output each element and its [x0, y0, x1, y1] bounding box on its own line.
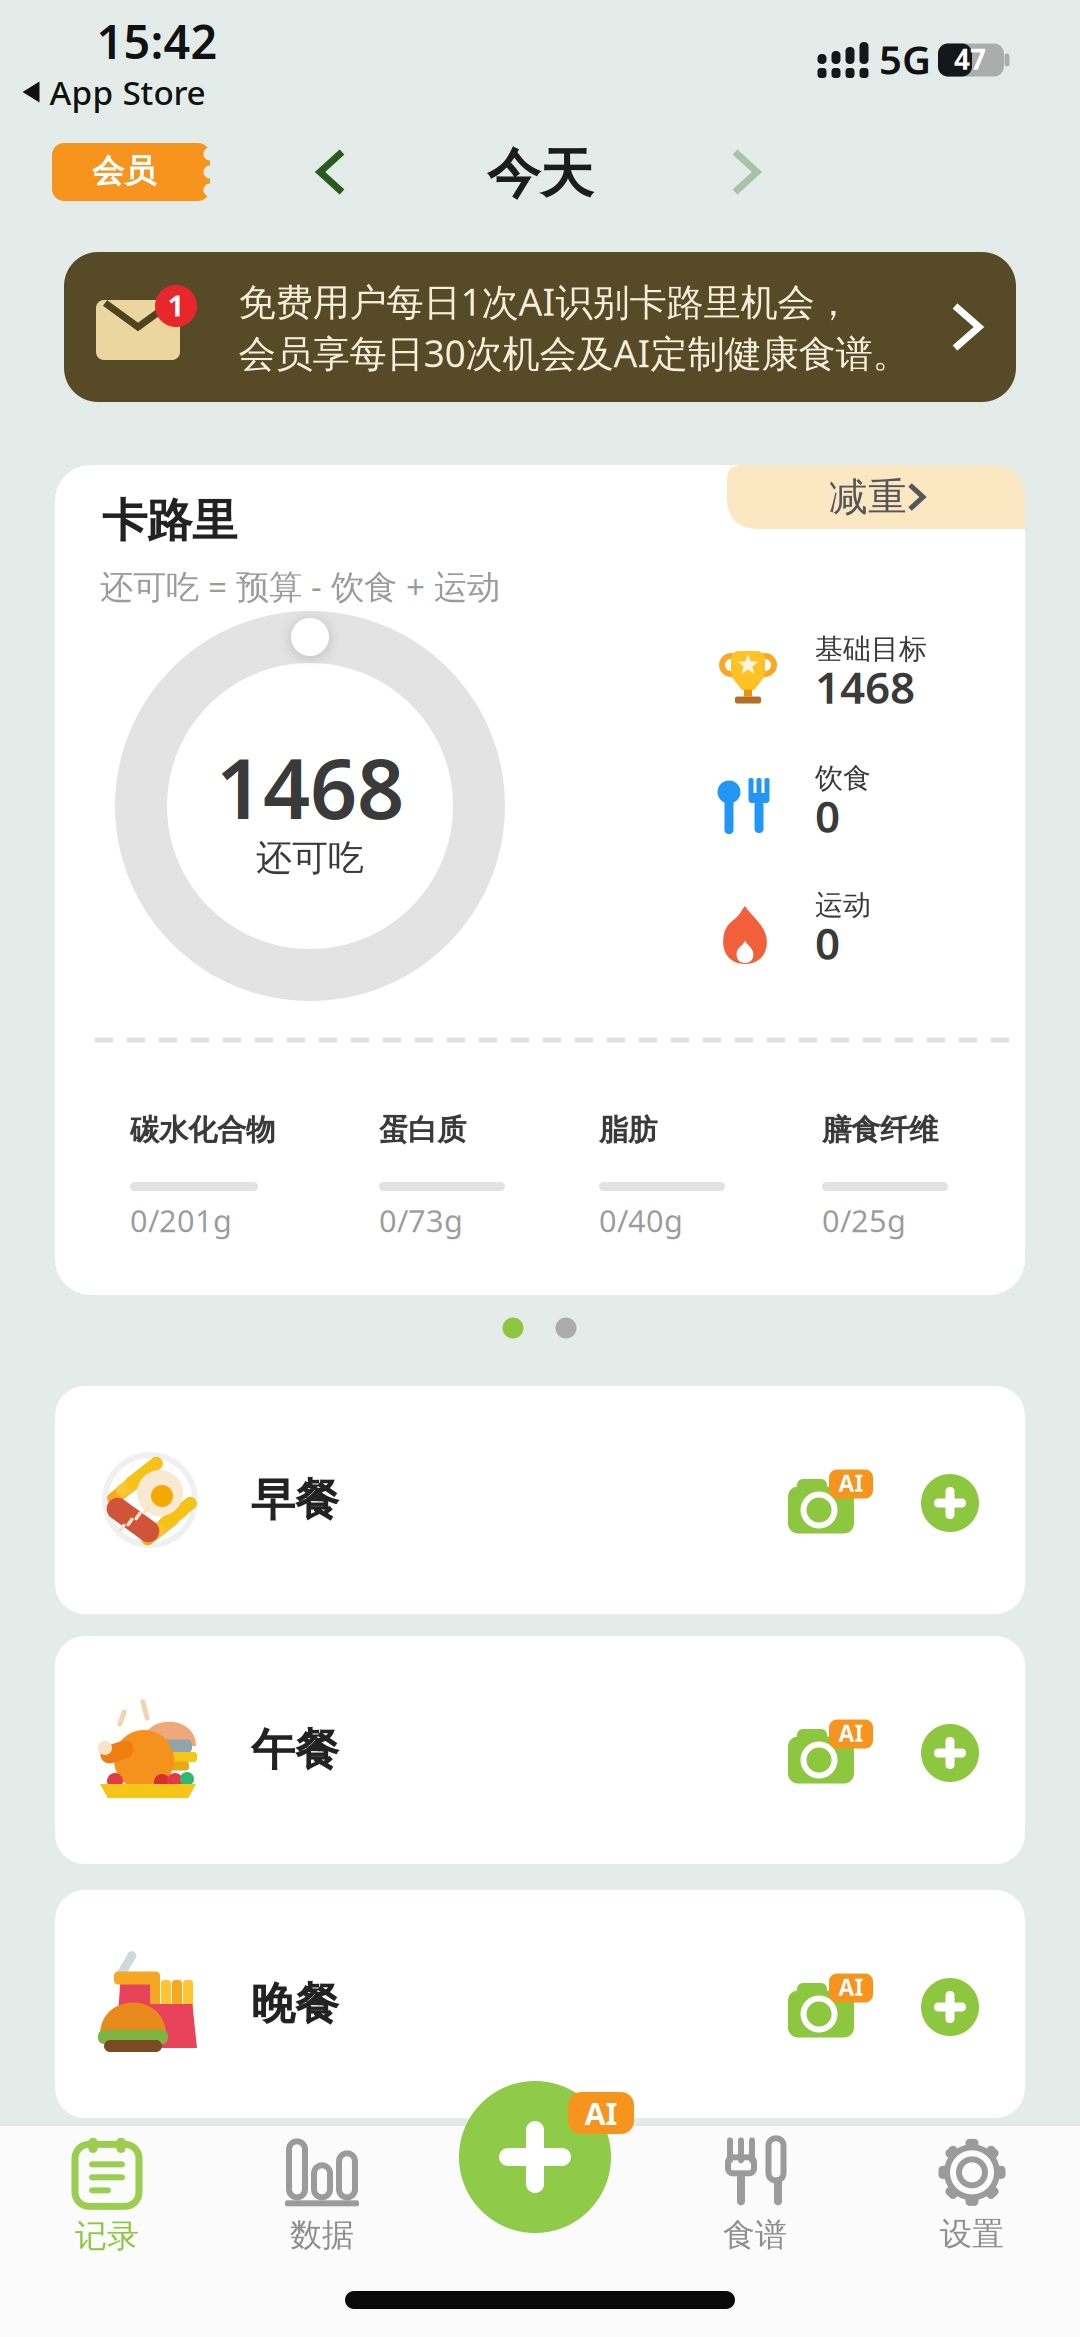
button[interactable] [921, 1474, 979, 1532]
button[interactable] [921, 1724, 979, 1782]
staticText: 午餐 [251, 1723, 339, 1777]
button[interactable]: 数据 [285, 2137, 359, 2255]
button[interactable] [320, 152, 342, 192]
staticText: 47 [954, 40, 986, 78]
staticText: AI [838, 1468, 863, 1498]
staticText: 碳水化合物 [130, 1112, 275, 1148]
button[interactable]: AI [788, 1465, 882, 1535]
staticText: 1468 [815, 657, 915, 716]
button[interactable]: AI [788, 1715, 882, 1785]
button[interactable] [55, 1636, 1025, 1864]
button[interactable]: 减重 [727, 465, 1025, 529]
staticText: 还可吃 = 预算 - 饮食 + 运动 [100, 564, 500, 608]
button[interactable] [735, 152, 757, 192]
staticText: 记录 [75, 2216, 139, 2256]
button[interactable]: AI [788, 1969, 882, 2039]
staticText: 蛋白质 [379, 1112, 466, 1148]
staticText: 还可吃 [256, 836, 364, 880]
button[interactable]: 会员 [52, 143, 210, 201]
staticText: AI [584, 2093, 617, 2133]
staticText: 0/201g [130, 1200, 232, 1241]
staticText: 会员享每日30次机会及AI定制健康食谱。 [238, 328, 909, 378]
staticText: 0 [815, 913, 840, 972]
staticText: 晚餐 [251, 1977, 339, 2031]
staticText: 脂肪 [599, 1112, 657, 1148]
button[interactable]: 设置 [938, 2138, 1006, 2254]
staticText: 5G [879, 32, 931, 85]
staticText: AI [838, 1972, 863, 2002]
staticText: 今天 [487, 141, 593, 207]
staticText: AI [838, 1718, 863, 1748]
button[interactable] [459, 2081, 611, 2233]
button[interactable] [55, 1890, 1025, 2118]
staticText: 卡路里 [102, 493, 237, 549]
button[interactable]: 记录 [73, 2136, 141, 2256]
staticText: 膳食纤维 [822, 1112, 938, 1148]
staticText: 1468 [216, 732, 404, 842]
button[interactable] [921, 1978, 979, 2036]
staticText: 15:42 [96, 10, 217, 72]
button[interactable]: 食谱 [723, 2137, 787, 2255]
staticText: 运动 [815, 888, 871, 922]
staticText: 减重 [829, 473, 907, 521]
staticText: 数据 [290, 2215, 354, 2255]
staticText: 0/73g [379, 1200, 463, 1241]
staticText: 0 [815, 786, 840, 845]
staticText: 0/40g [599, 1200, 683, 1241]
staticText: 早餐 [251, 1473, 339, 1527]
staticText: App Store [49, 70, 205, 114]
staticText: 设置 [940, 2214, 1004, 2254]
staticText: 饮食 [815, 761, 871, 795]
staticText: 0/25g [822, 1200, 906, 1241]
staticText: 免费用户每日1次AI识别卡路里机会， [238, 276, 851, 326]
button[interactable] [55, 1386, 1025, 1614]
button[interactable]: 1 [64, 252, 1016, 402]
staticText: 会员 [92, 151, 156, 191]
staticText: 1 [167, 285, 184, 324]
staticText: 食谱 [723, 2215, 787, 2255]
staticText: 基础目标 [815, 632, 927, 666]
